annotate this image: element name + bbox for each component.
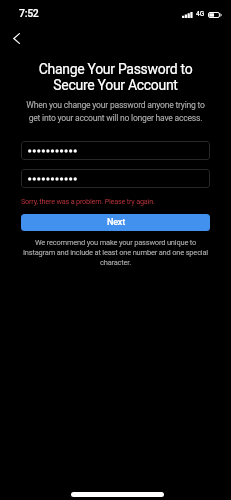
staticText: When you change your password anyone try…	[23, 100, 208, 123]
button[interactable]: Next	[21, 214, 210, 231]
staticText: 4G	[196, 10, 205, 18]
button[interactable]	[21, 169, 210, 188]
staticText: Next	[107, 217, 125, 228]
staticText: Sorry, there was a problem. Please try a…	[21, 197, 155, 206]
button[interactable]: Back	[6, 28, 26, 48]
staticText: 7:52	[19, 7, 39, 19]
staticText: We recommend you make your password uniq…	[19, 238, 212, 267]
button[interactable]	[21, 141, 210, 160]
staticText: Change Your Password to Secure Your Acco…	[14, 61, 217, 93]
